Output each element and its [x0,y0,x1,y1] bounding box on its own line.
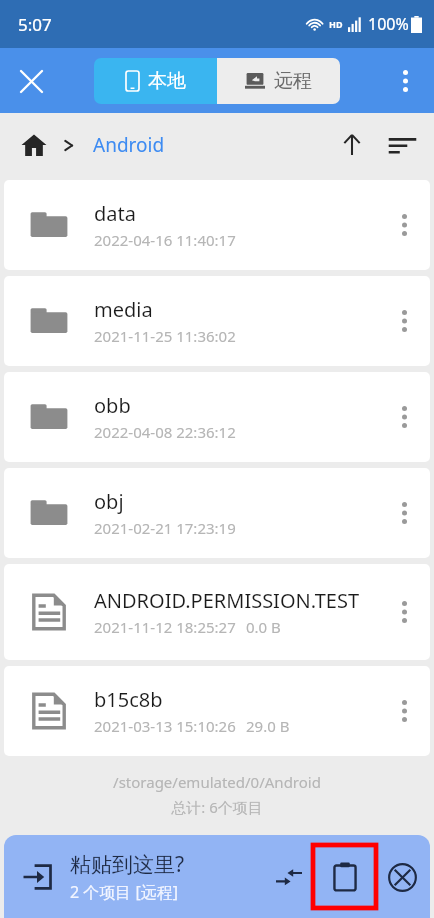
button[interactable]: ANDROID.PERMISSION.TEST [4,564,430,660]
button[interactable]: Compress [267,855,311,899]
staticText: 粘贴到这里? [70,850,185,879]
button[interactable]: Home [14,125,54,165]
staticText: 2021-11-25 11:36:02 [94,326,236,346]
button[interactable]: obb [4,372,430,462]
button[interactable]: Item menu [378,468,430,558]
staticText: 29.0 B [246,716,290,736]
button[interactable]: More options [382,58,428,104]
button[interactable]: Paste [313,845,376,908]
staticText: 总计: 6个项目 [171,797,263,817]
staticText: 远程 [274,69,312,93]
staticText: obb [94,392,131,419]
button[interactable]: data [4,180,430,270]
staticText: 2021-11-12 18:25:27 [94,617,236,637]
button[interactable]: Android [91,128,167,162]
button[interactable]: obj [4,468,430,558]
staticText: 0.0 B [246,617,281,637]
button[interactable]: Item menu [378,564,430,660]
button[interactable]: Sort [380,123,424,167]
button[interactable]: 远程 [217,58,340,104]
staticText: 2022-04-08 22:36:12 [94,422,236,442]
staticText: 100% [368,13,409,35]
button[interactable]: media [4,276,430,366]
staticText: obj [94,488,124,515]
button[interactable]: Item menu [378,276,430,366]
staticText: Android [93,132,165,158]
button[interactable]: b15c8b [4,666,430,756]
staticText: 本地 [148,69,186,93]
button[interactable]: Item menu [378,180,430,270]
staticText: 2022-04-16 11:40:17 [94,230,236,250]
staticText: data [94,200,136,227]
staticText: 2021-02-21 17:23:19 [94,518,236,538]
staticText: /storage/emulated/0/Android [113,772,321,792]
button[interactable]: Cancel [378,853,426,901]
staticText: b15c8b [94,686,163,713]
staticText: media [94,296,153,323]
button[interactable]: 粘贴到这里? [4,835,430,918]
button[interactable]: Close [8,58,54,104]
staticText: 2 个项目 [远程] [70,881,179,903]
button[interactable]: Item menu [378,372,430,462]
button[interactable]: Item menu [378,666,430,756]
staticText: 5:07 [18,13,52,36]
staticText: ANDROID.PERMISSION.TEST [94,587,360,614]
button[interactable]: Go up [330,123,374,167]
button[interactable]: 本地 [94,58,217,104]
staticText: 2021-03-13 15:10:26 [94,716,236,736]
staticText: HD [329,18,343,30]
